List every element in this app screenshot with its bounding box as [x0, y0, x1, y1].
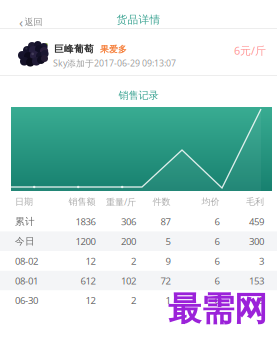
staticText: 6	[214, 254, 219, 267]
staticText: 最需网	[168, 288, 267, 330]
staticText: 1200	[75, 235, 95, 248]
staticText: 102	[121, 274, 136, 287]
staticText: 08-01	[15, 274, 38, 287]
staticText: 毛利	[246, 196, 264, 207]
staticText: 6	[214, 215, 219, 228]
staticText: 612	[80, 274, 95, 287]
staticText: 累计	[15, 215, 35, 228]
staticText: 6	[214, 294, 219, 307]
staticText: 重量/斤	[106, 196, 136, 208]
staticText: 153	[249, 274, 264, 287]
staticText: 果爱多	[100, 44, 127, 55]
staticText: 87	[160, 215, 170, 228]
staticText: 货品详情	[116, 13, 160, 26]
staticText: 459	[249, 215, 264, 228]
staticText: 06-30	[15, 294, 38, 307]
staticText: 6	[214, 235, 219, 248]
staticText: 日期	[15, 196, 33, 207]
staticText: 2	[131, 254, 136, 267]
staticText: 200	[121, 235, 136, 248]
staticText: 300	[249, 235, 264, 248]
staticText: 6	[214, 274, 219, 287]
staticText: 3	[259, 294, 264, 307]
staticText: 今日	[15, 235, 35, 247]
staticText: 12	[85, 294, 95, 307]
button[interactable]: ‹	[15, 8, 46, 36]
staticText: ‹	[19, 13, 23, 31]
staticText: 9	[165, 254, 170, 267]
staticText: 1836	[75, 215, 95, 228]
staticText: 销售记录	[118, 89, 158, 102]
staticText: 销售额	[68, 196, 95, 207]
staticText: 6元/斤	[234, 43, 266, 58]
staticText: 72	[160, 274, 170, 287]
staticText: 巨峰葡萄	[54, 43, 94, 55]
staticText: 均价	[201, 196, 219, 207]
staticText: 3	[259, 254, 264, 267]
staticText: 306	[121, 215, 136, 228]
staticText: Sky添加于2017-06-29 09:13:07	[53, 57, 176, 69]
staticText: 08-02	[15, 254, 38, 267]
staticText: 12	[85, 254, 95, 267]
staticText: 2	[131, 294, 136, 307]
staticText: 1	[165, 294, 170, 307]
staticText: 5	[165, 235, 170, 248]
staticText: 返回	[24, 16, 42, 28]
staticText: 件数	[152, 196, 170, 207]
